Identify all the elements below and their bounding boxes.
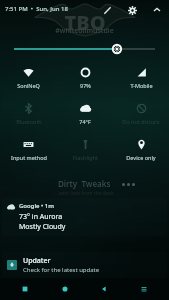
button[interactable]: T-Mobile xyxy=(113,62,169,98)
button[interactable]: SoniNeQ xyxy=(0,62,57,98)
staticText: Device only xyxy=(126,154,156,161)
staticText: Flashlight xyxy=(73,154,98,161)
button[interactable]: Collapse xyxy=(149,2,165,18)
staticText: Input method xyxy=(11,154,47,161)
staticText: Google • 1m xyxy=(19,202,54,210)
staticText: SoniNeQ xyxy=(17,82,40,89)
staticText: 73° in Aurora xyxy=(19,212,63,222)
button[interactable]: Google • 1m xyxy=(2,198,167,236)
button[interactable]: Edit tiles xyxy=(99,2,115,18)
staticText: Dirty Tweaks xyxy=(58,178,111,189)
staticText: Do not disturb xyxy=(122,118,160,125)
staticText: TBO xyxy=(64,9,106,36)
staticText: Mostly Cloudy xyxy=(19,222,66,232)
button[interactable]: Menu xyxy=(129,278,159,300)
staticText: Check for the latest update xyxy=(23,266,100,274)
button[interactable]: Updater xyxy=(2,252,167,278)
button[interactable]: Brightness xyxy=(0,38,169,60)
button[interactable]: Input method xyxy=(0,134,57,170)
staticText: Bluetooth xyxy=(16,118,42,125)
button[interactable]: Home xyxy=(50,278,80,300)
staticText: 74°F xyxy=(79,118,91,125)
staticText: #whiteoilmustdie xyxy=(55,26,114,36)
button[interactable]: Recents xyxy=(10,278,40,300)
button[interactable]: Do not disturb xyxy=(113,98,169,134)
button[interactable]: 74°F xyxy=(57,98,113,134)
button[interactable]: Flashlight xyxy=(57,134,113,170)
staticText: Updater xyxy=(23,256,51,266)
button[interactable]: Settings xyxy=(124,2,140,18)
button[interactable]: Device only xyxy=(113,134,169,170)
button[interactable]: Back xyxy=(89,278,119,300)
staticText: 97% xyxy=(80,82,91,89)
staticText: T-Mobile xyxy=(130,82,153,89)
button[interactable]: 97% xyxy=(57,62,113,98)
staticText: ...with love from the dark xyxy=(55,190,114,197)
button[interactable]: Bluetooth xyxy=(0,98,57,134)
staticText: 7:51 PM • Sun, Jun 18 xyxy=(5,5,68,13)
